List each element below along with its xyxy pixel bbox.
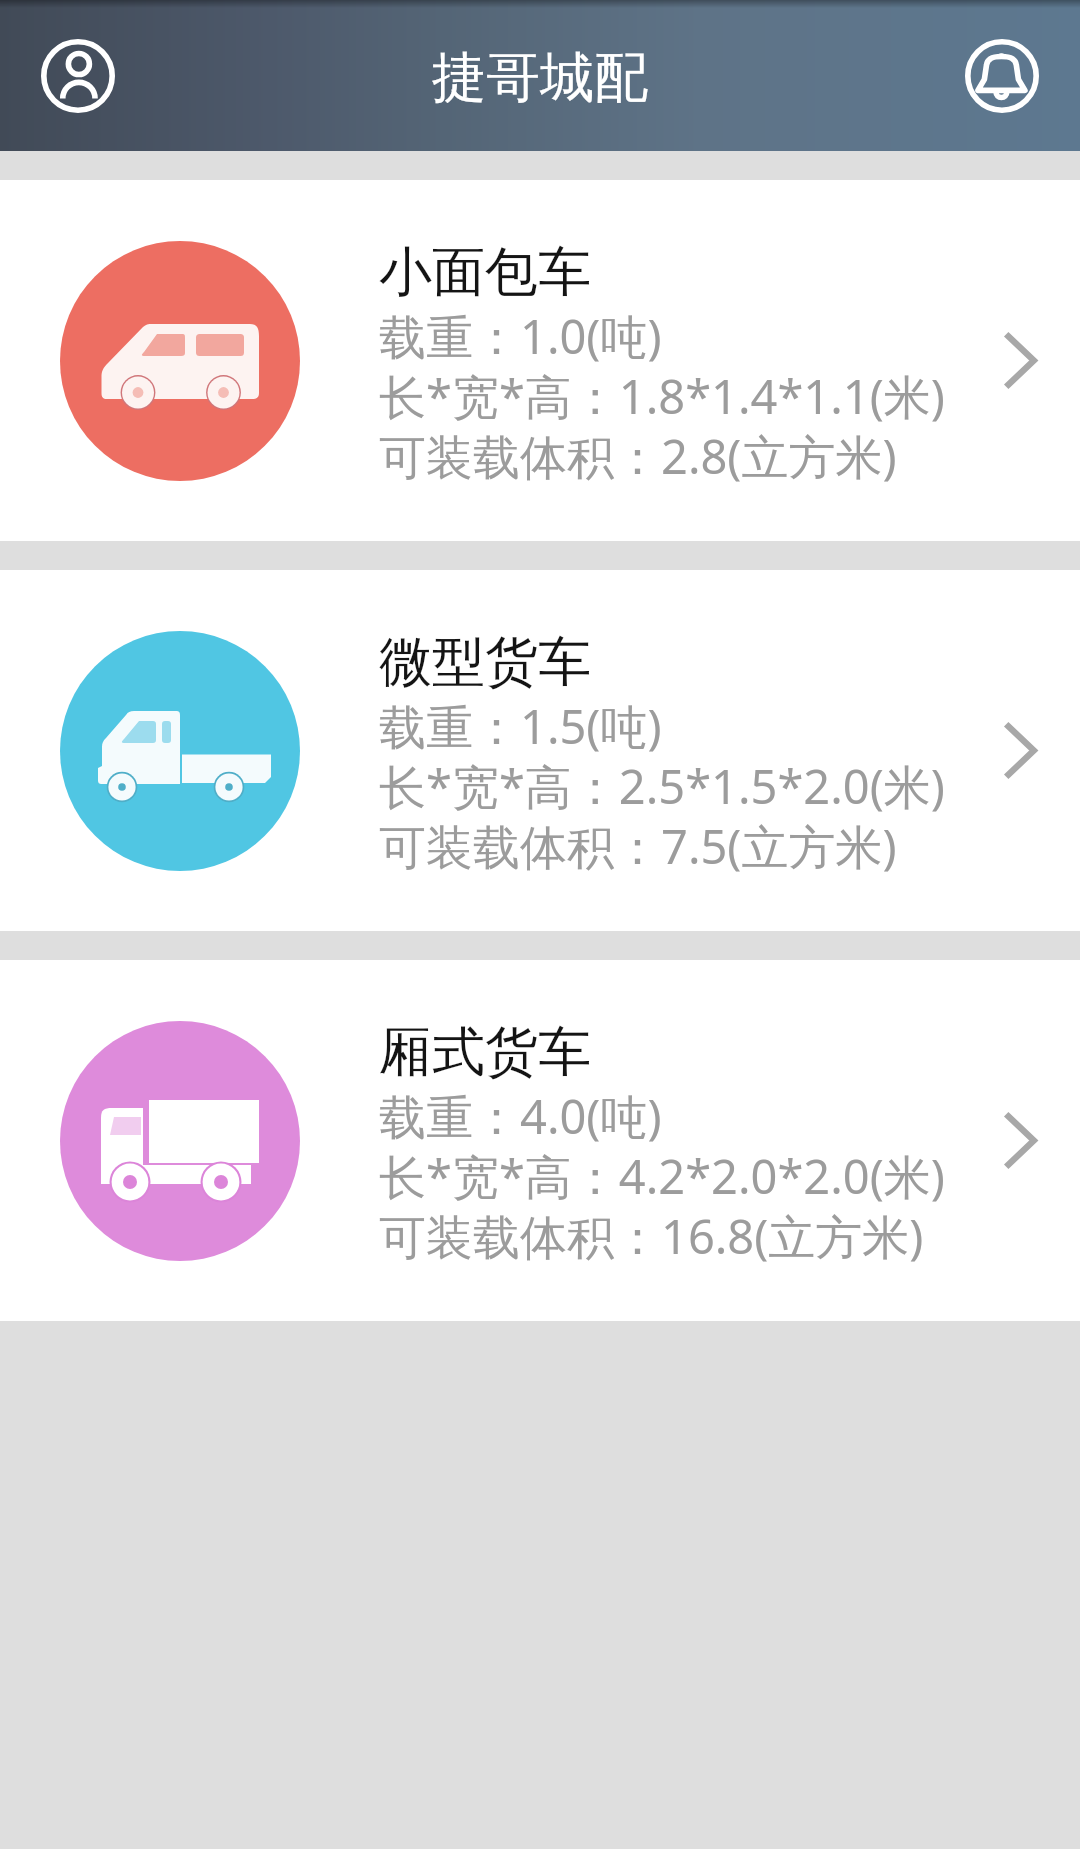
staticText: 长*宽*高：4.2*2.0*2.0(米) xyxy=(379,1144,945,1208)
staticText: 载重：1.5(吨) xyxy=(379,694,662,758)
staticText: 小面包车 xyxy=(379,239,591,306)
staticText: 长*宽*高：2.5*1.5*2.0(米) xyxy=(379,754,945,818)
staticText: 捷哥城配 xyxy=(432,44,648,112)
staticText: 长*宽*高：1.8*1.4*1.1(米) xyxy=(379,364,945,428)
button[interactable]: 小面包车 xyxy=(0,180,1080,541)
staticText: 可装载体积：2.8(立方米) xyxy=(379,424,897,488)
staticText: 载重：4.0(吨) xyxy=(379,1084,662,1148)
button[interactable]: Profile xyxy=(41,39,115,113)
button[interactable]: Notifications xyxy=(965,39,1039,113)
button[interactable]: 厢式货车 xyxy=(0,960,1080,1321)
staticText: 可装载体积：16.8(立方米) xyxy=(379,1204,924,1268)
button[interactable]: 微型货车 xyxy=(0,570,1080,931)
staticText: 厢式货车 xyxy=(379,1019,591,1086)
staticText: 载重：1.0(吨) xyxy=(379,304,662,368)
staticText: 微型货车 xyxy=(379,629,591,696)
staticText: 可装载体积：7.5(立方米) xyxy=(379,814,897,878)
